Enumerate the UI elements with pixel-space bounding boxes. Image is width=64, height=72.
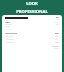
- staticText: LOOK: [26, 1, 38, 7]
- staticText: PROFESSIONAL: [16, 9, 48, 15]
- button[interactable]: [2, 15, 62, 72]
